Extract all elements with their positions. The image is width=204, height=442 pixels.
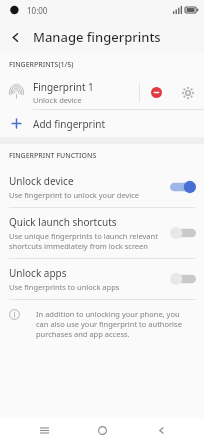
button[interactable]: Fingerprint settings [172,76,204,109]
button[interactable]: Back [0,22,30,52]
staticText: 10:00 [27,5,48,16]
button[interactable]: Off [170,226,196,240]
staticText: Use fingerprint to unlock your device [9,190,140,200]
staticText: In addition to unlocking your phone, you [36,309,180,319]
staticText: Quick launch shortcuts [9,215,117,229]
staticText: shortcuts immediately from lock screen [9,241,148,251]
staticText: Add fingerprint [33,117,106,131]
staticText: can also use your fingerprint to authori… [36,319,182,329]
button[interactable]: Off [170,272,196,286]
staticText: FINGERPRINT FUNCTIONS [9,151,97,161]
staticText: Unlock device [33,95,82,105]
staticText: Use fingerprints to unlock apps [9,282,120,292]
button[interactable]: Delete fingerprint [140,76,172,109]
button[interactable]: Recent apps [29,418,59,442]
staticText: FINGERPRINTS(1/5) [9,60,74,70]
staticText: Unlock apps [9,266,67,280]
staticText: purchases and app access. [36,329,130,339]
button[interactable]: On [170,180,196,194]
button[interactable]: Add fingerprint [0,110,204,137]
button[interactable]: Quick launch shortcuts [0,208,204,258]
button[interactable]: Unlock device [0,167,204,207]
staticText: Unlock device [9,174,74,188]
button[interactable]: Fingerprint 1 [0,76,204,109]
button[interactable]: Unlock apps [0,259,204,299]
staticText: Manage fingerprints [33,28,161,46]
button[interactable]: Home [87,418,117,442]
button[interactable]: Back [146,418,176,442]
staticText: Fingerprint 1 [33,80,94,94]
staticText: Use unique fingerprints to launch releva… [9,231,158,241]
